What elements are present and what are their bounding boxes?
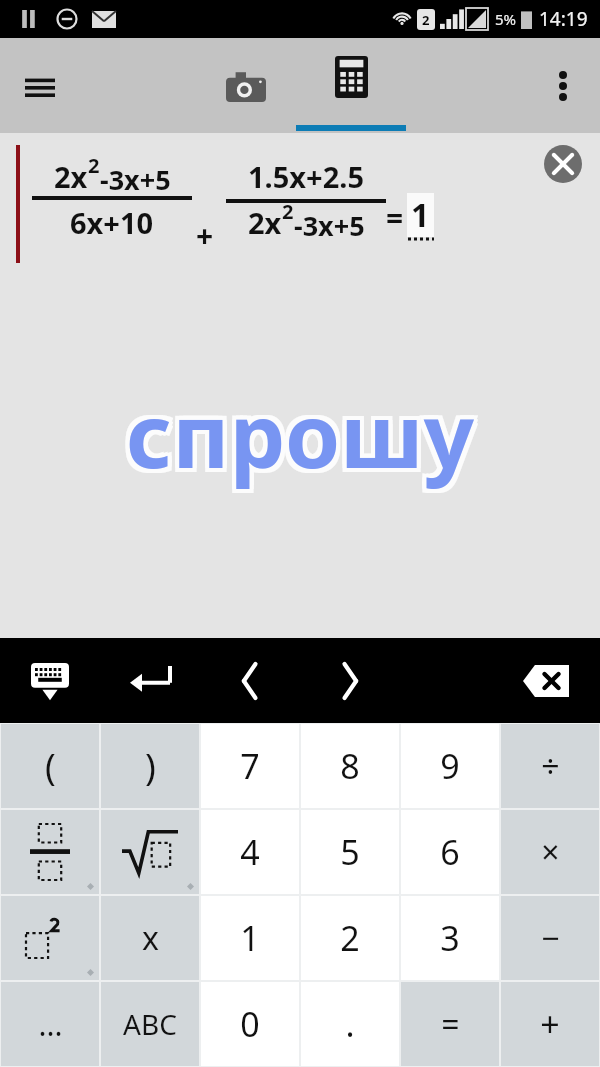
- staticText: ABC: [123, 1005, 177, 1043]
- staticText: ÷: [541, 744, 560, 788]
- staticText: +: [196, 215, 214, 256]
- staticText: спрошу: [122, 374, 470, 494]
- button[interactable]: 7: [201, 724, 299, 808]
- staticText: 5: [340, 829, 360, 875]
- staticText: ): [145, 742, 156, 791]
- staticText: 2: [340, 915, 360, 961]
- button[interactable]: 1: [201, 896, 299, 980]
- button[interactable]: 0: [201, 982, 299, 1066]
- button[interactable]: −: [501, 896, 599, 980]
- staticText: 7: [240, 743, 260, 789]
- button[interactable]: ABC: [101, 982, 199, 1066]
- staticText: 1.5x+2.5: [248, 157, 365, 196]
- button[interactable]: Move left: [218, 638, 282, 723]
- button[interactable]: (: [1, 724, 99, 808]
- button[interactable]: Fraction: [1, 810, 99, 894]
- staticText: 1: [411, 193, 430, 237]
- staticText: =: [386, 197, 404, 238]
- button[interactable]: Calculator: [296, 38, 406, 133]
- staticText: спрошу: [130, 370, 478, 490]
- staticText: -3x+5: [100, 161, 171, 198]
- staticText: 6: [440, 829, 460, 875]
- staticText: .: [345, 1001, 355, 1047]
- button[interactable]: 6: [401, 810, 499, 894]
- staticText: 5%: [495, 9, 517, 29]
- staticText: 0: [240, 1001, 260, 1047]
- staticText: -3x+5: [294, 207, 365, 244]
- button[interactable]: Square root: [101, 810, 199, 894]
- staticText: спрошу: [130, 374, 478, 494]
- button[interactable]: Backspace: [514, 649, 578, 713]
- staticText: спрошу: [126, 378, 474, 498]
- staticText: 2: [282, 198, 294, 225]
- button[interactable]: ): [101, 724, 199, 808]
- button[interactable]: 3: [401, 896, 499, 980]
- button[interactable]: ...: [1, 982, 99, 1066]
- staticText: 2: [88, 152, 100, 179]
- button[interactable]: Move right: [318, 638, 382, 723]
- button[interactable]: ×: [501, 810, 599, 894]
- button[interactable]: x: [101, 896, 199, 980]
- button[interactable]: Enter: [118, 638, 182, 723]
- staticText: ×: [541, 830, 560, 874]
- staticText: спрошу: [122, 370, 470, 490]
- button[interactable]: 5: [301, 810, 399, 894]
- button[interactable]: Camera: [209, 50, 283, 122]
- staticText: спрошу: [122, 378, 470, 498]
- staticText: 14:19: [539, 6, 588, 32]
- staticText: спрошу: [126, 370, 474, 490]
- staticText: 9: [440, 743, 460, 789]
- staticText: 4: [240, 829, 260, 875]
- staticText: =: [441, 1002, 460, 1046]
- staticText: 2x: [248, 203, 282, 242]
- button[interactable]: 9: [401, 724, 499, 808]
- button[interactable]: Clear: [540, 141, 586, 187]
- staticText: спрошу: [126, 374, 474, 494]
- staticText: 2: [422, 11, 430, 29]
- button[interactable]: Hide keyboard: [18, 638, 82, 723]
- button[interactable]: 4: [201, 810, 299, 894]
- staticText: 8: [340, 743, 360, 789]
- staticText: (: [45, 742, 56, 791]
- staticText: 6x+10: [70, 203, 154, 242]
- staticText: −: [541, 916, 560, 960]
- button[interactable]: .: [301, 982, 399, 1066]
- button[interactable]: ÷: [501, 724, 599, 808]
- staticText: x: [142, 916, 159, 960]
- button[interactable]: More options: [536, 59, 590, 113]
- button[interactable]: +: [501, 982, 599, 1066]
- button[interactable]: 8: [301, 724, 399, 808]
- staticText: +: [540, 1001, 560, 1047]
- staticText: 1: [240, 915, 260, 961]
- button[interactable]: 2: [301, 896, 399, 980]
- staticText: ...: [38, 1004, 63, 1045]
- staticText: 3: [440, 915, 460, 961]
- button[interactable]: Power: [1, 896, 99, 980]
- button[interactable]: =: [401, 982, 499, 1066]
- button[interactable]: Menu: [12, 58, 68, 114]
- staticText: спрошу: [130, 378, 478, 498]
- staticText: 2x: [54, 157, 88, 196]
